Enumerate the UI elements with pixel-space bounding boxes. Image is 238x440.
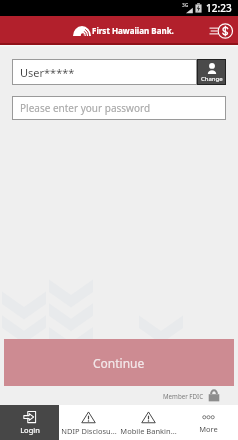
staticText: Change bbox=[201, 75, 223, 83]
button[interactable]: Login bbox=[0, 405, 59, 440]
staticText: NDIP Disclosu... bbox=[61, 426, 117, 436]
staticText: More bbox=[199, 424, 218, 434]
staticText: First Hawaiian Bank. bbox=[92, 25, 174, 36]
staticText: Member FDIC bbox=[163, 392, 204, 400]
staticText: 3G bbox=[182, 2, 189, 9]
button[interactable]: Please enter your password bbox=[12, 96, 226, 120]
staticText: User***** bbox=[20, 65, 75, 80]
button[interactable]: NDIP Disclosu... bbox=[59, 405, 118, 440]
button[interactable]: Quick Balance bbox=[208, 20, 234, 42]
button[interactable]: Change bbox=[197, 59, 226, 85]
staticText: Login bbox=[20, 425, 40, 435]
staticText: Mobile Bankin... bbox=[120, 426, 177, 436]
button[interactable]: More bbox=[178, 405, 238, 440]
staticText: 12:23 bbox=[206, 1, 232, 15]
button[interactable]: Mobile Bankin... bbox=[118, 405, 178, 440]
staticText: Please enter your password bbox=[20, 101, 151, 115]
staticText: Continue bbox=[93, 355, 145, 371]
button[interactable]: User***** bbox=[12, 59, 197, 85]
button[interactable]: Continue bbox=[4, 339, 234, 386]
